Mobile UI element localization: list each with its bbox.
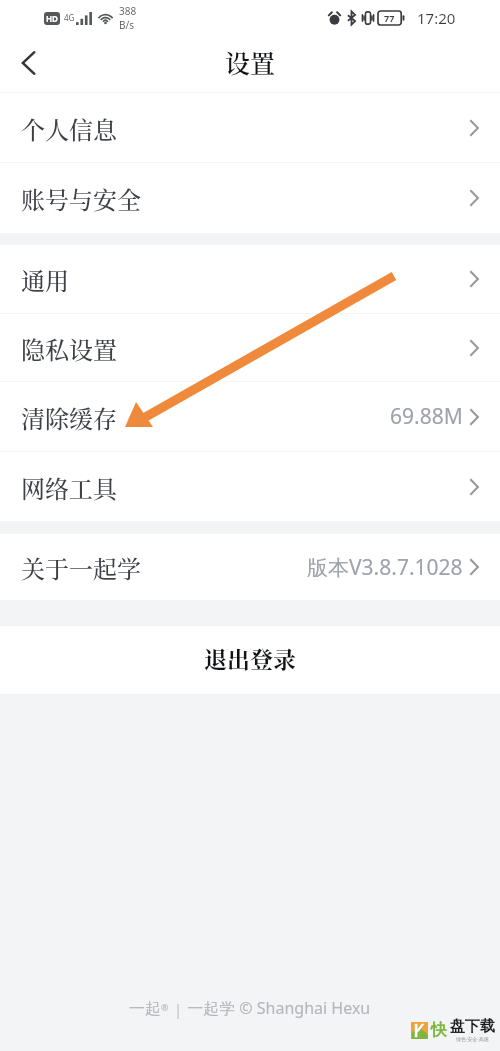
button[interactable]: Back [8, 43, 48, 83]
staticText: 账号与安全 [21, 181, 141, 215]
staticText: | [174, 999, 183, 1019]
staticText: 4G [64, 12, 75, 23]
button[interactable]: 网络工具 [0, 452, 500, 521]
staticText: HD [46, 13, 58, 24]
button[interactable]: 账号与安全 [0, 163, 500, 233]
staticText: 个人信息 [21, 111, 117, 145]
staticText: 69.88M [390, 402, 463, 431]
staticText: 设置 [225, 44, 276, 80]
staticText: 一起 [129, 999, 161, 1019]
staticText: 17:20 [417, 8, 456, 28]
staticText: 清除缓存 [21, 400, 117, 434]
button[interactable]: 退出登录 [0, 626, 500, 694]
staticText: 盘下载 [450, 1017, 495, 1036]
staticText: B/s [119, 18, 135, 32]
button[interactable]: 通用 [0, 245, 500, 314]
staticText: 一起学 © Shanghai Hexu [183, 997, 371, 1019]
staticText: 隐私设置 [21, 331, 117, 365]
staticText: 388 [119, 4, 137, 18]
button[interactable]: 清除缓存 [0, 382, 500, 452]
staticText: 通用 [21, 262, 69, 296]
staticText: 快 [431, 1020, 447, 1040]
button[interactable]: 个人信息 [0, 93, 500, 163]
button[interactable]: 关于一起学 [0, 534, 500, 600]
staticText: 关于一起学 [21, 550, 141, 584]
staticText: ® [161, 1001, 169, 1013]
staticText: 绿色·安全·高速 [456, 1036, 489, 1043]
staticText: 退出登录 [204, 642, 296, 675]
button[interactable]: 隐私设置 [0, 314, 500, 382]
staticText: 版本V3.8.7.1028 [307, 553, 463, 582]
staticText: 网络工具 [21, 470, 117, 504]
staticText: 77 [384, 12, 395, 24]
